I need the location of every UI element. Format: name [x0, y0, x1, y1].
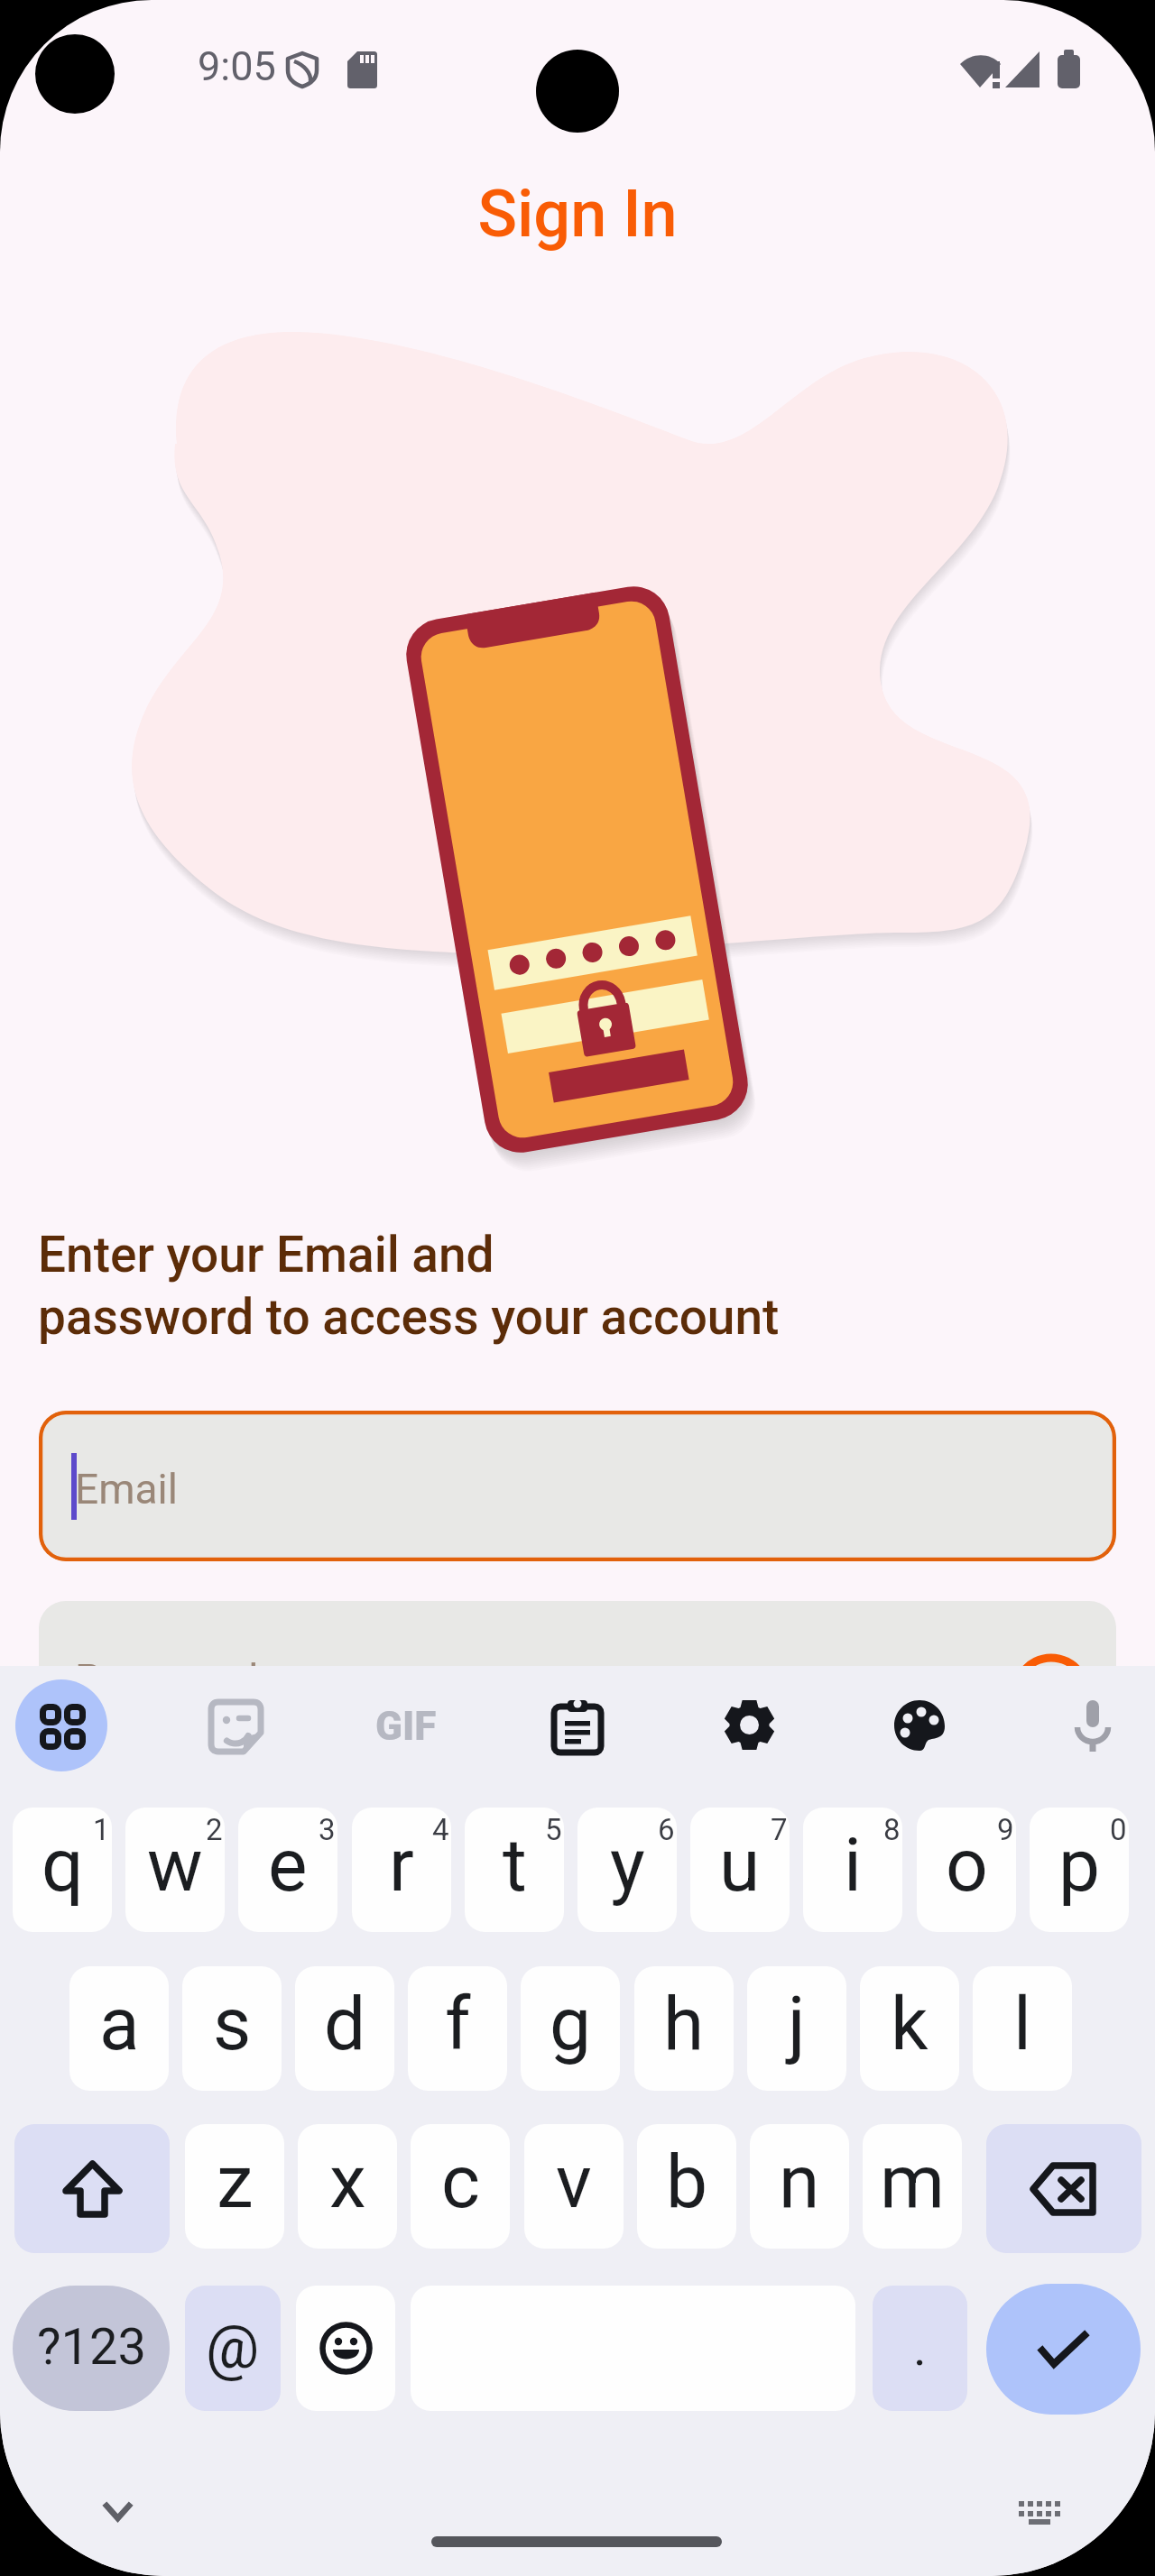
staticText: y [610, 1822, 645, 1909]
button[interactable]: Voice input [1049, 1682, 1136, 1769]
button[interactable]: k [860, 1966, 959, 2091]
staticText: GIF [375, 1703, 437, 1750]
button[interactable]: Emoji [296, 2286, 395, 2411]
staticText: n [779, 2139, 820, 2225]
staticText: t [503, 1822, 527, 1909]
staticText: . [913, 2318, 927, 2378]
button[interactable]: o [917, 1808, 1016, 1932]
staticText: 2 [206, 1812, 223, 1847]
button[interactable]: Settings [706, 1681, 792, 1768]
button[interactable]: Password [39, 1601, 1116, 1752]
staticText: 5 [545, 1812, 562, 1847]
staticText: 7 [771, 1812, 788, 1847]
button[interactable]: q [13, 1808, 112, 1932]
button[interactable]: y [577, 1808, 677, 1932]
button[interactable]: Shift [14, 2124, 170, 2253]
button[interactable]: Enter [986, 2284, 1141, 2415]
button[interactable]: z [185, 2124, 284, 2249]
button[interactable]: x [298, 2124, 397, 2249]
button[interactable]: m [863, 2124, 962, 2249]
staticText: 3 [319, 1812, 336, 1847]
staticText: ?123 [37, 2317, 146, 2377]
staticText: u [719, 1822, 761, 1909]
button[interactable]: Keyboard menu [15, 1679, 107, 1771]
staticText: l [1013, 1981, 1031, 2067]
staticText: o [946, 1822, 988, 1909]
staticText: k [891, 1981, 929, 2067]
staticText: 6 [658, 1812, 675, 1847]
button[interactable]: Show password [1001, 1630, 1102, 1731]
button[interactable]: u [690, 1808, 790, 1932]
button[interactable]: b [637, 2124, 736, 2249]
staticText: 9 [997, 1812, 1014, 1847]
staticText: 1 [93, 1812, 110, 1847]
button[interactable]: e [238, 1808, 337, 1932]
button[interactable]: g [521, 1966, 620, 2091]
staticText: j [788, 1981, 806, 2067]
staticText: Password [75, 1655, 259, 1704]
staticText: Sign In [0, 176, 1155, 252]
button[interactable]: Clipboard [534, 1683, 621, 1770]
button[interactable]: . [873, 2286, 967, 2411]
button[interactable]: GIF [363, 1683, 449, 1770]
button[interactable]: f [408, 1966, 507, 2091]
staticText: Enter your Email and [38, 1226, 494, 1283]
staticText: b [666, 2139, 708, 2225]
button[interactable]: t [465, 1808, 564, 1932]
button[interactable]: h [634, 1966, 734, 2091]
button[interactable]: n [750, 2124, 849, 2249]
button[interactable]: v [524, 2124, 624, 2249]
button[interactable]: d [295, 1966, 394, 2091]
staticText: c [441, 2139, 480, 2225]
staticText: e [268, 1822, 308, 1909]
button[interactable]: a [69, 1966, 169, 2091]
staticText: i [844, 1822, 862, 1909]
button[interactable]: c [411, 2124, 510, 2249]
staticText: 4 [432, 1812, 449, 1847]
button[interactable]: w [125, 1808, 225, 1932]
button[interactable]: Stickers [192, 1683, 279, 1770]
button[interactable]: i [803, 1808, 902, 1932]
staticText: password to access your account [38, 1288, 780, 1346]
staticText: d [324, 1981, 366, 2067]
staticText: @ [206, 2313, 260, 2382]
staticText: 0 [1110, 1812, 1127, 1847]
staticText: q [42, 1822, 84, 1909]
staticText: a [99, 1981, 140, 2067]
staticText: 8 [883, 1812, 901, 1847]
staticText: m [880, 2139, 945, 2225]
staticText: g [550, 1981, 592, 2067]
staticText: p [1058, 1822, 1101, 1909]
staticText: s [213, 1981, 252, 2067]
staticText: r [389, 1822, 414, 1909]
button[interactable]: l [973, 1966, 1072, 2091]
staticText: v [556, 2139, 592, 2225]
button[interactable]: ?123 [13, 2286, 170, 2411]
staticText: Email [75, 1465, 178, 1513]
button[interactable]: s [182, 1966, 282, 2091]
staticText: 9:05 [198, 42, 276, 90]
staticText: x [329, 2139, 366, 2225]
staticText: f [445, 1981, 471, 2067]
staticText: w [147, 1822, 203, 1909]
button[interactable]: @ [185, 2286, 281, 2411]
button[interactable]: Change keyboard [1004, 2478, 1073, 2546]
button[interactable]: r [352, 1808, 451, 1932]
staticText: h [663, 1981, 705, 2067]
button[interactable]: Email [39, 1411, 1116, 1561]
button[interactable]: Theme [876, 1682, 963, 1769]
button[interactable]: p [1030, 1808, 1129, 1932]
button[interactable]: Backspace [986, 2124, 1141, 2253]
button[interactable]: Hide keyboard [83, 2478, 152, 2546]
button[interactable]: j [747, 1966, 846, 2091]
staticText: z [217, 2139, 254, 2225]
